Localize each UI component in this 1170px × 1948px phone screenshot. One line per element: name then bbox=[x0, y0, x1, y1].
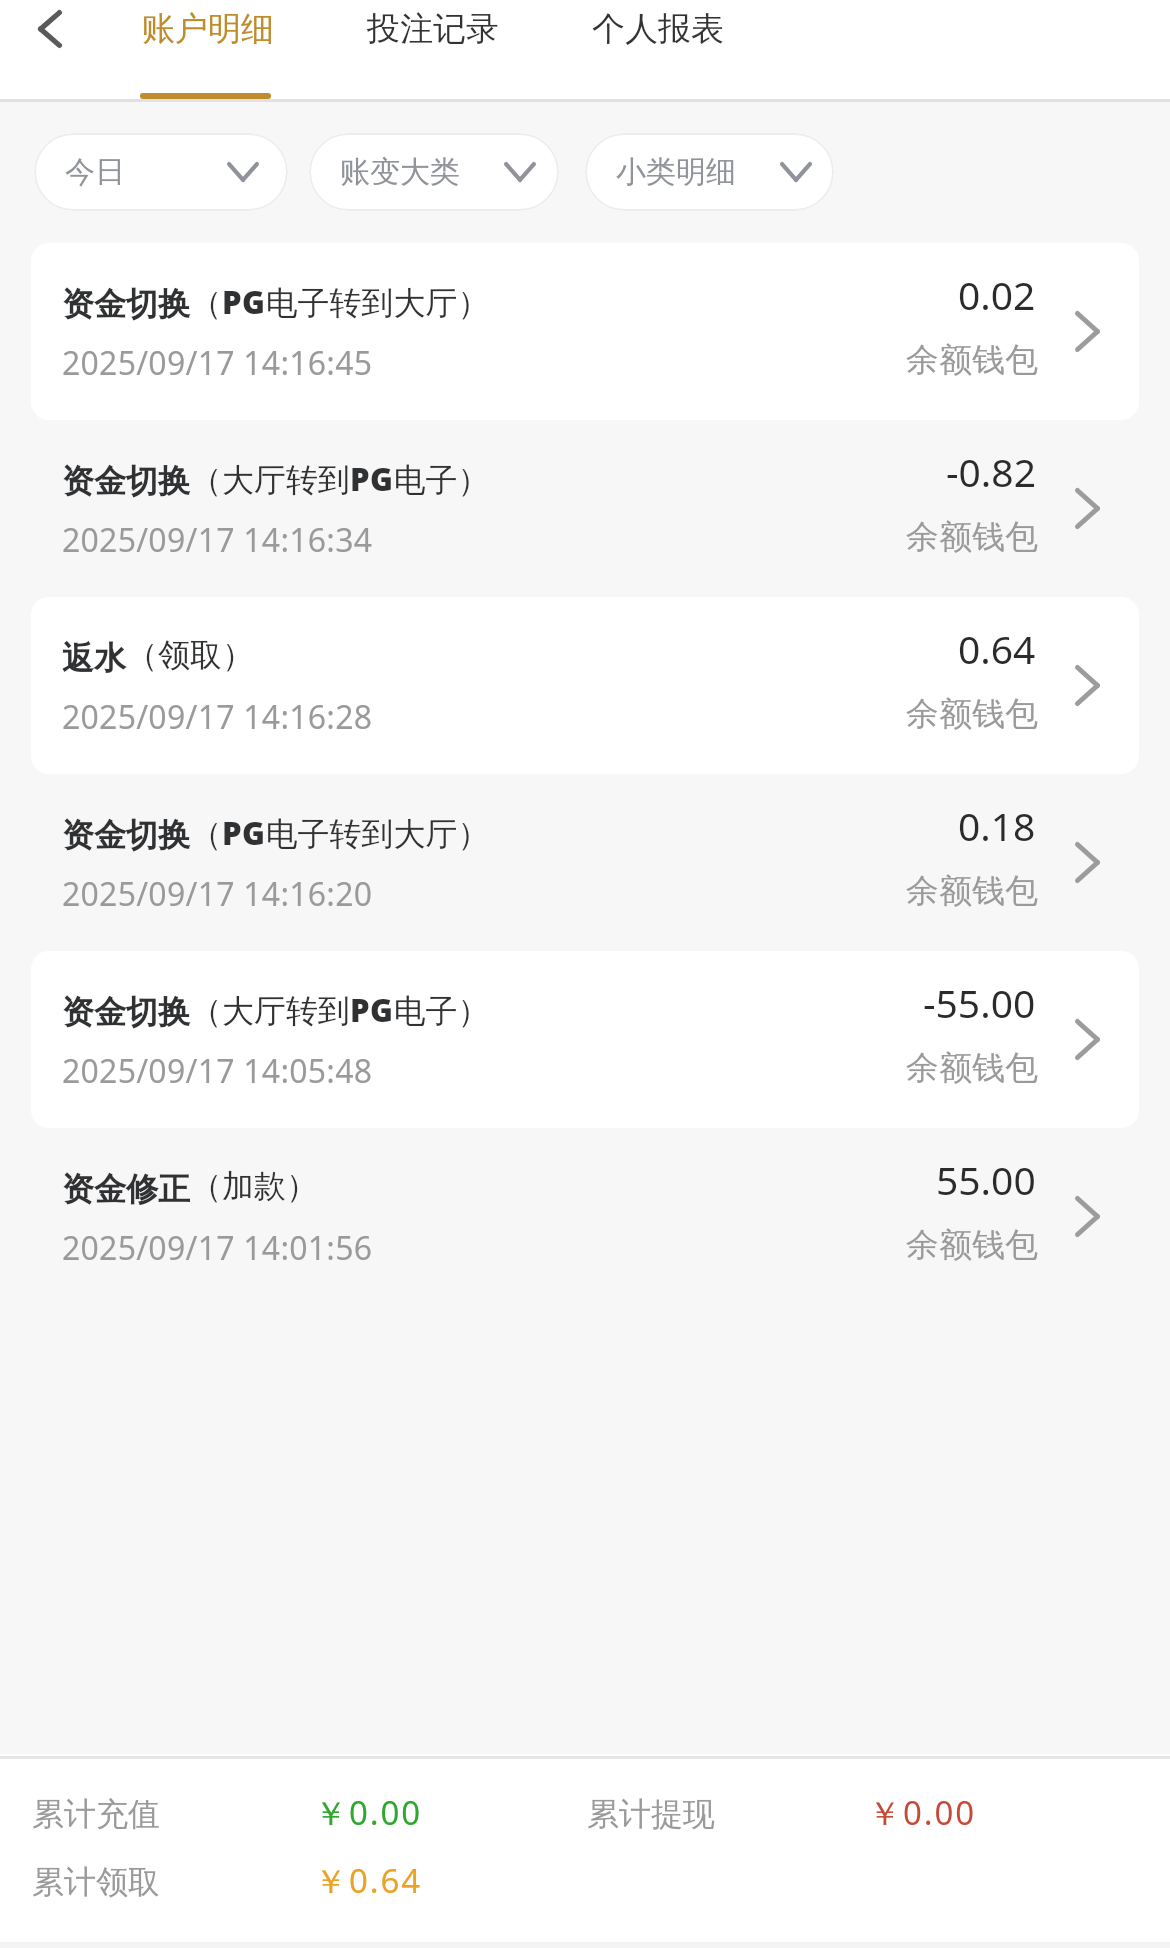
staticText: 个人报表 bbox=[592, 8, 724, 50]
staticText: 累计领取 bbox=[32, 1862, 160, 1902]
staticText: 资金切换 bbox=[62, 284, 190, 324]
staticText: （加款） bbox=[190, 1166, 318, 1206]
staticText: （PG电子转到大厅） bbox=[190, 812, 490, 855]
staticText: 资金切换 bbox=[62, 815, 190, 855]
staticText: ￥0.64 bbox=[314, 1858, 422, 1903]
staticText: ￥0.00 bbox=[868, 1790, 976, 1835]
button[interactable]: 返水 bbox=[31, 597, 1139, 774]
button[interactable]: 账户明细 bbox=[126, 0, 285, 99]
button[interactable]: 资金切换 bbox=[31, 420, 1139, 597]
staticText: 今日 bbox=[65, 153, 125, 191]
staticText: 余额钱包 bbox=[906, 516, 1038, 558]
staticText: 累计提现 bbox=[587, 1794, 715, 1834]
staticText: 0.02 bbox=[958, 268, 1036, 321]
staticText: （大厅转到PG电子） bbox=[190, 458, 490, 501]
staticText: 返水 bbox=[62, 638, 126, 678]
staticText: 2025/09/17 14:01:56 bbox=[62, 1226, 373, 1270]
staticText: 资金修正 bbox=[62, 1169, 190, 1209]
button[interactable]: 投注记录 bbox=[351, 0, 510, 99]
staticText: （大厅转到PG电子） bbox=[190, 989, 490, 1032]
button[interactable]: 资金修正 bbox=[31, 1128, 1139, 1305]
staticText: 余额钱包 bbox=[906, 1047, 1038, 1089]
staticText: 资金切换 bbox=[62, 461, 190, 501]
button[interactable]: 今日 bbox=[34, 133, 288, 211]
staticText: 2025/09/17 14:16:34 bbox=[62, 518, 373, 562]
staticText: （PG电子转到大厅） bbox=[190, 281, 490, 324]
button[interactable]: 个人报表 bbox=[576, 0, 735, 99]
staticText: 2025/09/17 14:16:20 bbox=[62, 872, 373, 916]
staticText: 55.00 bbox=[936, 1153, 1036, 1206]
button[interactable]: 资金切换 bbox=[31, 243, 1139, 420]
staticText: 小类明细 bbox=[616, 153, 736, 191]
staticText: 0.64 bbox=[958, 622, 1036, 675]
staticText: 累计充值 bbox=[32, 1794, 160, 1834]
staticText: 余额钱包 bbox=[906, 339, 1038, 381]
staticText: 2025/09/17 14:16:28 bbox=[62, 695, 373, 739]
staticText: 2025/09/17 14:05:48 bbox=[62, 1049, 373, 1093]
staticText: 账户明细 bbox=[142, 8, 274, 50]
staticText: 0.18 bbox=[958, 799, 1036, 852]
button[interactable]: Back bbox=[14, 0, 86, 58]
button[interactable]: 账变大类 bbox=[309, 133, 559, 211]
button[interactable]: 小类明细 bbox=[585, 133, 834, 211]
staticText: 资金切换 bbox=[62, 992, 190, 1032]
button[interactable]: 资金切换 bbox=[31, 951, 1139, 1128]
staticText: 2025/09/17 14:16:45 bbox=[62, 341, 373, 385]
staticText: -55.00 bbox=[923, 976, 1036, 1029]
staticText: 账变大类 bbox=[340, 153, 460, 191]
staticText: 投注记录 bbox=[367, 8, 499, 50]
staticText: 余额钱包 bbox=[906, 1224, 1038, 1266]
staticText: 余额钱包 bbox=[906, 693, 1038, 735]
staticText: ￥0.00 bbox=[314, 1790, 422, 1835]
staticText: 余额钱包 bbox=[906, 870, 1038, 912]
staticText: （领取） bbox=[126, 635, 254, 675]
button[interactable]: 资金切换 bbox=[31, 774, 1139, 951]
staticText: -0.82 bbox=[946, 445, 1036, 498]
